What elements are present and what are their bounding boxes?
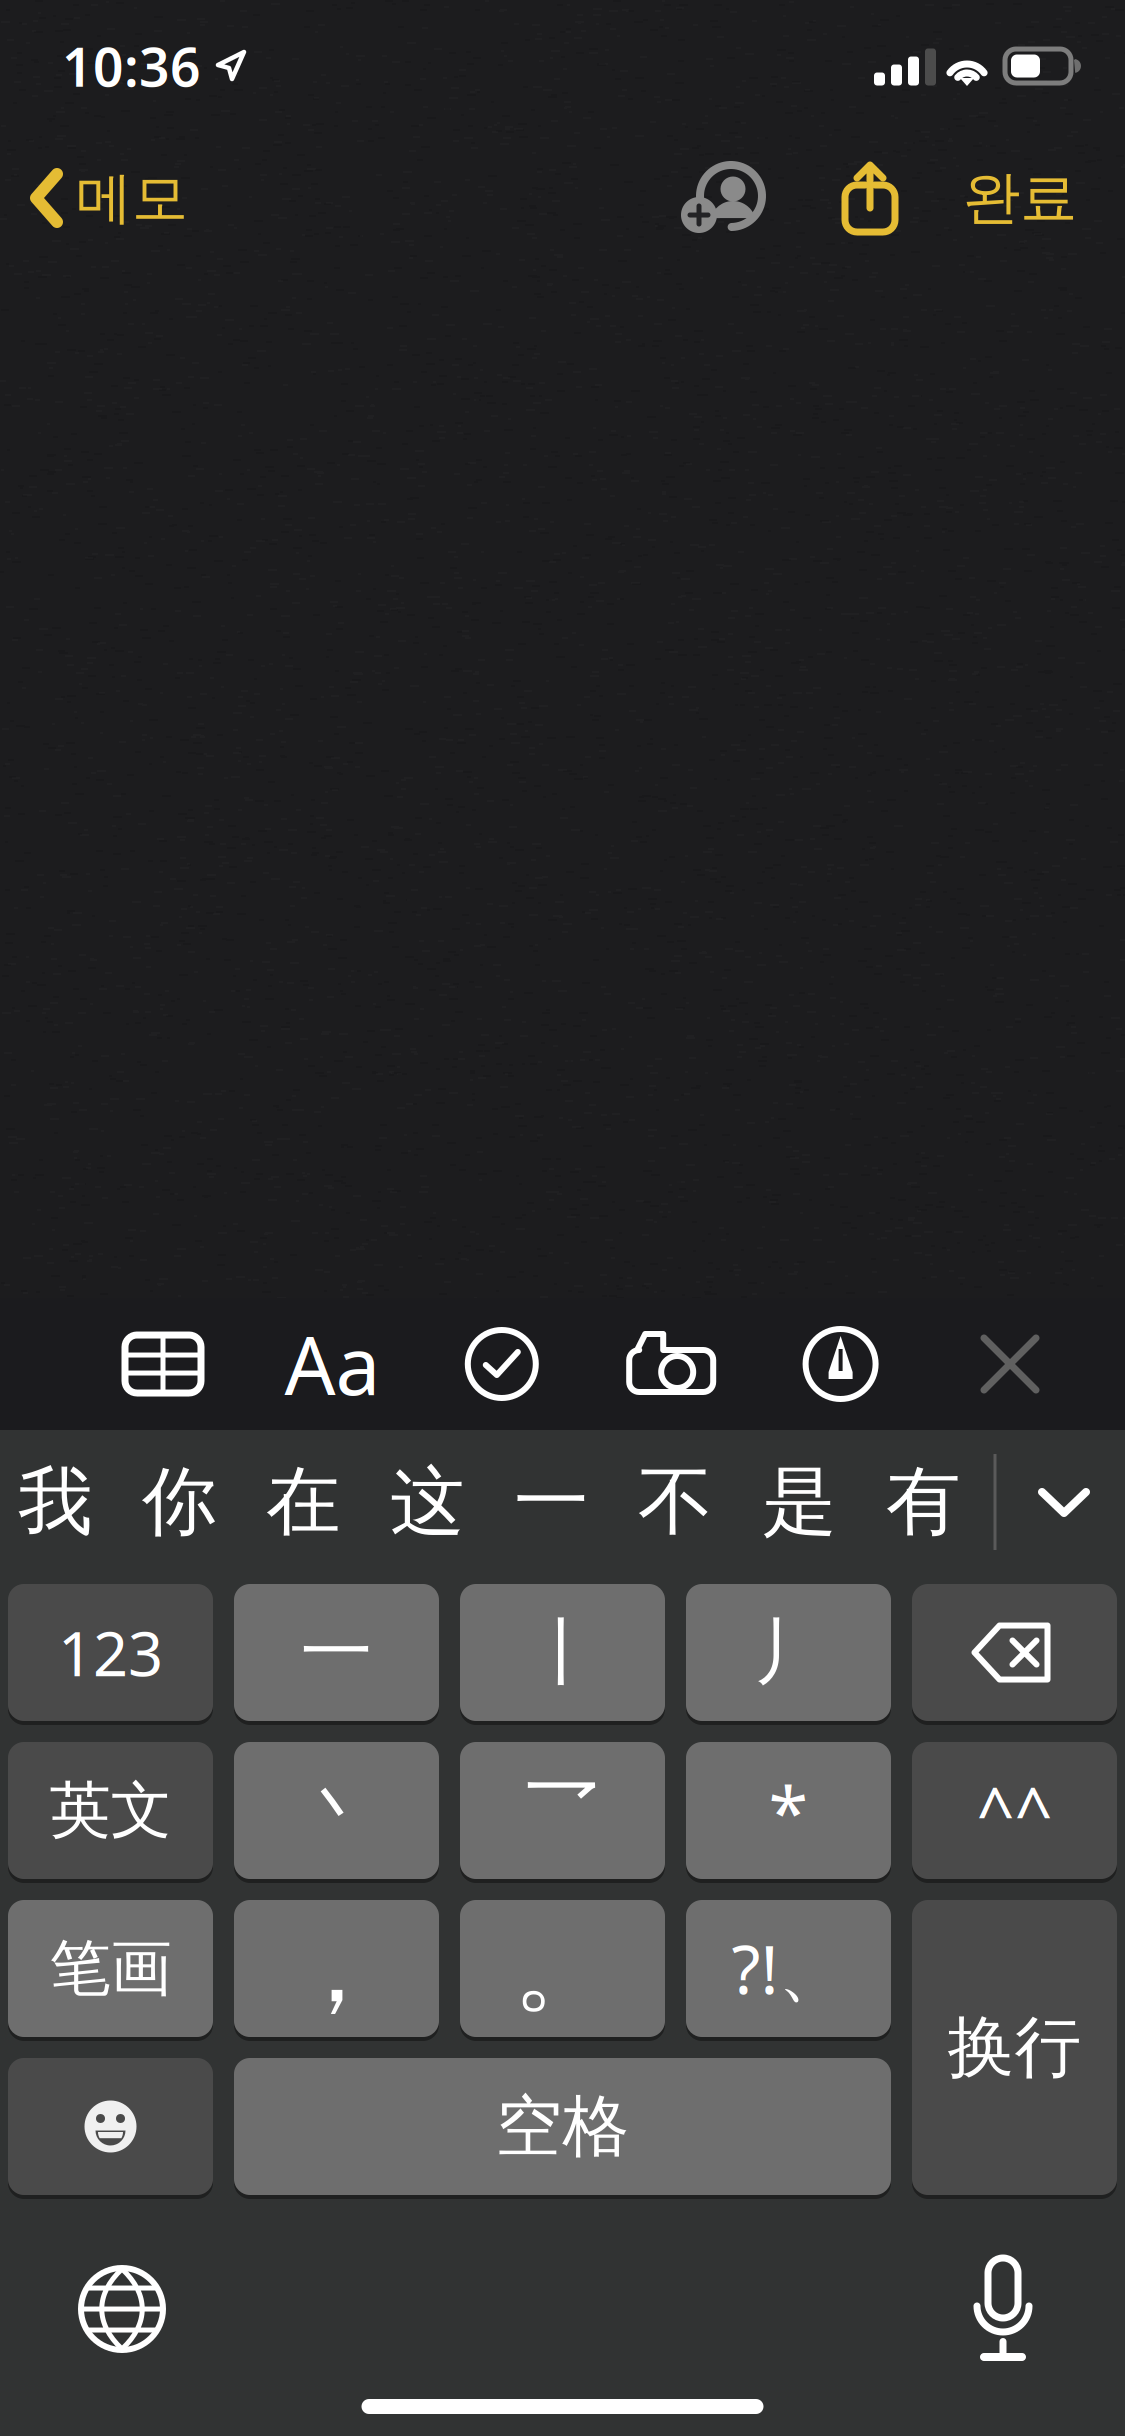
staticText: ?!、 — [731, 1924, 845, 2013]
button[interactable]: 空格 — [234, 2056, 891, 2197]
button[interactable]: 一 — [234, 1582, 439, 1723]
staticText: 在 — [266, 1456, 341, 1548]
button[interactable]: 완료 — [957, 132, 1083, 264]
button[interactable]: 乛 — [460, 1740, 665, 1881]
button[interactable]: Markup — [774, 1298, 908, 1430]
staticText: 一 — [300, 1608, 372, 1697]
staticText: 메모 — [76, 164, 188, 232]
button[interactable]: Camera — [604, 1298, 738, 1430]
staticText: 这 — [390, 1456, 465, 1548]
staticText: 笔画 — [49, 1931, 171, 2006]
button[interactable]: 메모 — [0, 132, 208, 264]
button[interactable]: 一 — [489, 1430, 613, 1574]
staticText: 有 — [886, 1456, 961, 1548]
button[interactable]: 123 — [8, 1582, 213, 1723]
staticText: 一 — [514, 1456, 589, 1548]
button[interactable]: Add People — [659, 132, 781, 264]
button[interactable]: Close — [943, 1298, 1077, 1430]
button[interactable]: 在 — [241, 1430, 365, 1574]
staticText: 空格 — [495, 2086, 629, 2167]
staticText: 丶 — [300, 1766, 372, 1855]
button[interactable]: 丶 — [234, 1740, 439, 1881]
button[interactable]: Hide candidates — [996, 1430, 1125, 1574]
button[interactable]: Delete — [912, 1582, 1117, 1723]
staticText: 换行 — [947, 2007, 1081, 2088]
button[interactable]: ， — [234, 1898, 439, 2039]
staticText: * — [768, 1763, 808, 1858]
button[interactable]: Kaomoji — [912, 1740, 1117, 1881]
staticText: 不 — [638, 1456, 713, 1548]
button[interactable]: 。 — [460, 1898, 665, 2039]
button[interactable]: 是 — [737, 1430, 861, 1574]
staticText: 丨 — [526, 1608, 598, 1697]
staticText: 丿 — [752, 1608, 824, 1697]
button[interactable]: 你 — [117, 1430, 241, 1574]
staticText: Aa — [284, 1311, 380, 1417]
button[interactable]: 丨 — [460, 1582, 665, 1723]
staticText: 。 — [513, 1908, 612, 2029]
button[interactable]: Checklist — [435, 1298, 569, 1430]
button[interactable]: 英文 — [8, 1740, 213, 1881]
button[interactable]: 丿 — [686, 1582, 891, 1723]
button[interactable]: 我 — [0, 1430, 117, 1574]
staticText: 是 — [762, 1456, 837, 1548]
button[interactable]: Emoji — [8, 2056, 213, 2197]
staticText: 你 — [142, 1456, 217, 1548]
staticText: 乛 — [526, 1766, 598, 1855]
button[interactable]: 有 — [861, 1430, 985, 1574]
staticText: 我 — [18, 1456, 93, 1548]
button[interactable]: Next keyboard — [62, 2249, 182, 2369]
staticText: 10:36 — [62, 31, 201, 101]
button[interactable]: * — [686, 1740, 891, 1881]
button[interactable]: 笔画 — [8, 1898, 213, 2039]
staticText: 완료 — [963, 163, 1077, 233]
staticText: ， — [287, 1908, 386, 2029]
staticText: 123 — [58, 1612, 163, 1693]
button[interactable]: Dictate — [943, 2249, 1063, 2369]
button[interactable]: Share — [809, 132, 931, 264]
button[interactable]: Aa — [265, 1298, 399, 1430]
button[interactable]: 这 — [365, 1430, 489, 1574]
button[interactable]: Return — [912, 1898, 1117, 2197]
button[interactable]: ?!、 — [686, 1898, 891, 2039]
button[interactable]: 不 — [613, 1430, 737, 1574]
staticText: 英文 — [49, 1773, 171, 1848]
staticText: ^^ — [976, 1766, 1052, 1855]
button[interactable]: Table — [96, 1298, 230, 1430]
